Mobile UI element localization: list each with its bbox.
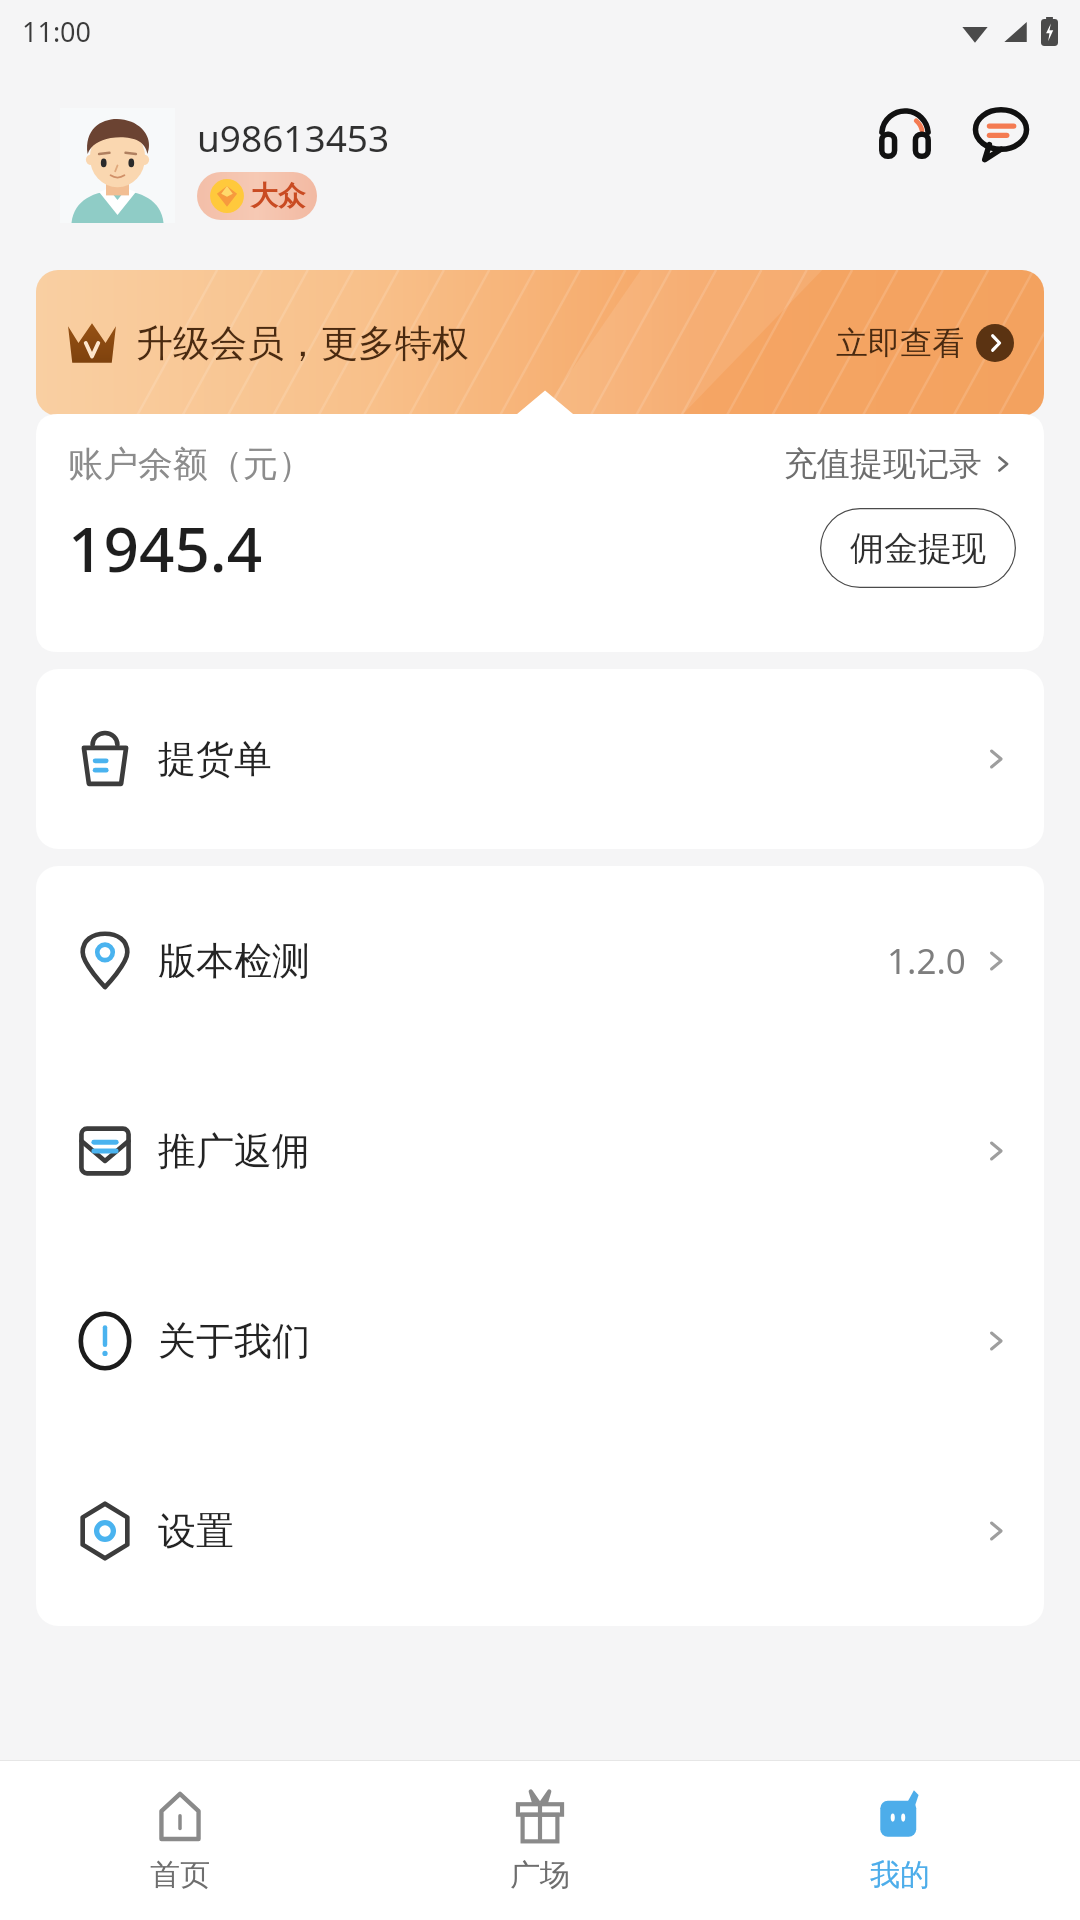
button[interactable]: 充值提现记录 [784, 443, 1016, 485]
staticText: 立即查看 [836, 323, 964, 363]
staticText: 账户余额（元） [68, 442, 313, 486]
button[interactable]: Customer service [870, 98, 940, 168]
button[interactable]: 关于我们 [36, 1246, 1044, 1436]
button[interactable]: 广场 [360, 1761, 720, 1920]
staticText: 广场 [510, 1856, 570, 1894]
button[interactable]: 大众 [197, 172, 317, 220]
staticText: 关于我们 [158, 1317, 310, 1365]
staticText: 设置 [158, 1507, 234, 1555]
staticText: 1.2.0 [887, 937, 966, 985]
staticText: 首页 [150, 1856, 210, 1894]
staticText: 大众 [251, 179, 305, 213]
staticText: 升级会员，更多特权 [136, 320, 469, 367]
staticText: u98613453 [197, 112, 390, 162]
staticText: 版本检测 [158, 937, 310, 985]
button[interactable]: 设置 [36, 1436, 1044, 1626]
button[interactable]: Messages [966, 98, 1036, 168]
staticText: 推广返佣 [158, 1127, 310, 1175]
button[interactable]: 提货单 [36, 669, 1044, 849]
staticText: 提货单 [158, 735, 272, 783]
staticText: 充值提现记录 [784, 443, 982, 485]
button[interactable]: 升级会员，更多特权 [36, 270, 1044, 416]
staticText: 11:00 [22, 13, 92, 50]
button[interactable]: 佣金提现 [820, 508, 1016, 588]
staticText: 我的 [870, 1856, 930, 1894]
button[interactable]: 版本检测 [36, 866, 1044, 1056]
button[interactable]: 推广返佣 [36, 1056, 1044, 1246]
staticText: 1945.4 [68, 506, 263, 590]
button[interactable]: 我的 [720, 1761, 1080, 1920]
button[interactable]: 首页 [0, 1761, 360, 1920]
staticText: 佣金提现 [850, 527, 986, 570]
